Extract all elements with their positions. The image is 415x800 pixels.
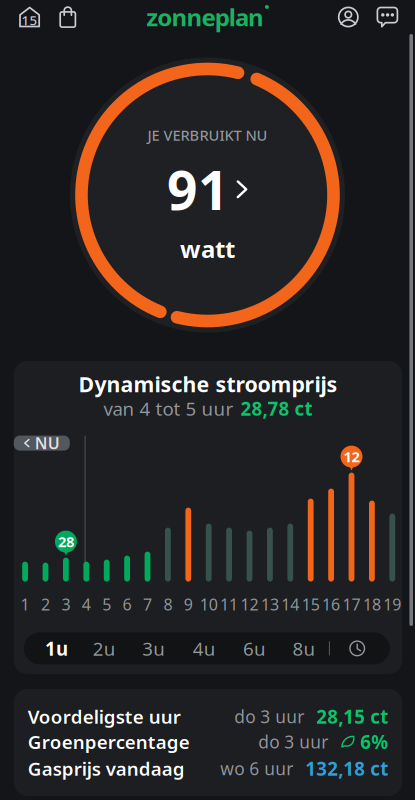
staticText: 1 bbox=[21, 594, 30, 615]
staticText: 5 bbox=[102, 594, 111, 615]
button[interactable]: Gasprijs vandaag bbox=[14, 756, 402, 781]
staticText: 132,18 ct bbox=[305, 756, 388, 781]
staticText: do 3 uur bbox=[258, 730, 328, 753]
button[interactable]: Home bbox=[13, 1, 47, 33]
staticText: 4u bbox=[193, 636, 216, 661]
staticText: zonneplan bbox=[146, 1, 264, 33]
staticText: 3 bbox=[61, 594, 70, 615]
staticText: 28,78 ct bbox=[241, 396, 313, 421]
staticText: 4 bbox=[82, 594, 91, 615]
staticText: 2u bbox=[93, 636, 116, 661]
button[interactable]: NU bbox=[14, 436, 70, 451]
staticText: Dynamische stroomprijs bbox=[78, 370, 337, 398]
staticText: Voordeligste uur bbox=[28, 704, 181, 729]
button[interactable]: History bbox=[337, 632, 377, 664]
staticText: watt bbox=[180, 233, 235, 265]
button[interactable]: 8u bbox=[282, 632, 326, 664]
staticText: van 4 tot 5 uur bbox=[103, 396, 233, 421]
staticText: Gasprijs vandaag bbox=[28, 756, 185, 781]
button[interactable]: Messages bbox=[371, 1, 403, 33]
staticText: 12 bbox=[343, 447, 359, 466]
staticText: 91 bbox=[167, 154, 229, 225]
staticText: 12 bbox=[240, 594, 258, 615]
button[interactable]: Groenpercentage bbox=[14, 729, 402, 754]
staticText: 6 bbox=[123, 594, 132, 615]
staticText: 28 bbox=[58, 532, 74, 551]
staticText: 1u bbox=[45, 636, 68, 661]
button[interactable]: Account bbox=[332, 1, 364, 33]
staticText: 6u bbox=[243, 636, 266, 661]
staticText: 7 bbox=[143, 594, 152, 615]
staticText: 11 bbox=[220, 594, 238, 615]
staticText: 15 bbox=[302, 594, 320, 615]
staticText: 14 bbox=[281, 594, 299, 615]
staticText: 8u bbox=[293, 636, 316, 661]
staticText: 18 bbox=[363, 594, 381, 615]
staticText: 2 bbox=[41, 594, 50, 615]
staticText: 6% bbox=[360, 729, 388, 754]
staticText: 8 bbox=[163, 594, 172, 615]
staticText: wo 6 uur bbox=[220, 757, 293, 780]
staticText: JE VERBRUIKT NU bbox=[147, 125, 267, 145]
staticText: 9 bbox=[184, 594, 193, 615]
staticText: do 3 uur bbox=[234, 705, 304, 728]
staticText: 28,15 ct bbox=[316, 704, 388, 729]
staticText: 13 bbox=[261, 594, 279, 615]
button[interactable]: 2u bbox=[82, 632, 126, 664]
staticText: 19 bbox=[383, 594, 401, 615]
button[interactable]: Voordeligste uur bbox=[14, 704, 402, 729]
staticText: 15 bbox=[22, 11, 38, 29]
button[interactable]: 4u bbox=[182, 632, 226, 664]
staticText: Groenpercentage bbox=[28, 729, 190, 754]
staticText: 10 bbox=[200, 594, 218, 615]
button[interactable]: 6u bbox=[233, 632, 277, 664]
staticText: NU bbox=[35, 432, 60, 454]
staticText: 3u bbox=[142, 636, 165, 661]
staticText: 16 bbox=[322, 594, 340, 615]
staticText: 17 bbox=[342, 594, 360, 615]
button[interactable]: 3u bbox=[132, 632, 176, 664]
button[interactable]: Shop bbox=[52, 1, 84, 33]
button[interactable]: 1u bbox=[35, 632, 79, 664]
